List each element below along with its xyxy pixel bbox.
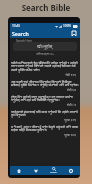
staticText: Search	[12, 30, 29, 37]
staticText: रोमी ८:१	[11, 103, 76, 107]
staticText: यूहन्ना १४:६	[11, 133, 76, 137]
button[interactable]: अब यसरी नयाँ जीवनमा हिँड्नुहोस् किनभने त…	[11, 78, 79, 93]
staticText: परमेश्वरले संसारलाई यति माया गर्नुभयो कि…	[11, 109, 79, 117]
staticText: परिणामहरू ४५	[10, 52, 80, 56]
button[interactable]: यसैले मानिसहरूले येशू ख्रीष्टमाथि भरोसा …	[11, 59, 79, 78]
staticText: रोमी ६:४	[11, 88, 76, 92]
staticText: म नै बाटो, सत्य र जीवन हुँ भनेर येशूले भ…	[11, 124, 79, 132]
button[interactable]: Home	[10, 166, 27, 175]
button[interactable]: म नै बाटो, सत्य र जीवन हुँ भनेर येशूले भ…	[11, 123, 79, 138]
staticText: 10:45	[12, 24, 21, 28]
button[interactable]: Search	[44, 166, 62, 175]
staticText: Search Here	[16, 39, 32, 43]
staticText: रोमी १:१६	[11, 73, 76, 77]
staticText: यसैले मानिसहरूले येशू ख्रीष्टमाथि भरोसा …	[11, 60, 79, 72]
button[interactable]: Favorites	[27, 166, 44, 175]
staticText: यूहन्ना ३:१६	[11, 118, 76, 122]
staticText: Search	[50, 171, 57, 174]
staticText: 100%	[63, 24, 72, 28]
button[interactable]: Settings	[62, 166, 80, 175]
staticText: खोज्नुहोस्	[37, 44, 53, 50]
button[interactable]: हरेक दिन उहाँको वचन पढ्नुहोस् र मन लगाएर…	[11, 93, 79, 108]
staticText: अब यसरी नयाँ जीवनमा हिँड्नुहोस् किनभने त…	[11, 79, 79, 87]
button[interactable]: Bookmarks	[69, 29, 78, 38]
button[interactable]: खोज्नुहोस्	[13, 42, 77, 51]
button[interactable]: परमेश्वरले संसारलाई यति माया गर्नुभयो कि…	[11, 108, 79, 123]
staticText: Search Bible	[0, 2, 92, 13]
staticText: हरेक दिन उहाँको वचन पढ्नुहोस् र मन लगाएर…	[11, 94, 79, 102]
